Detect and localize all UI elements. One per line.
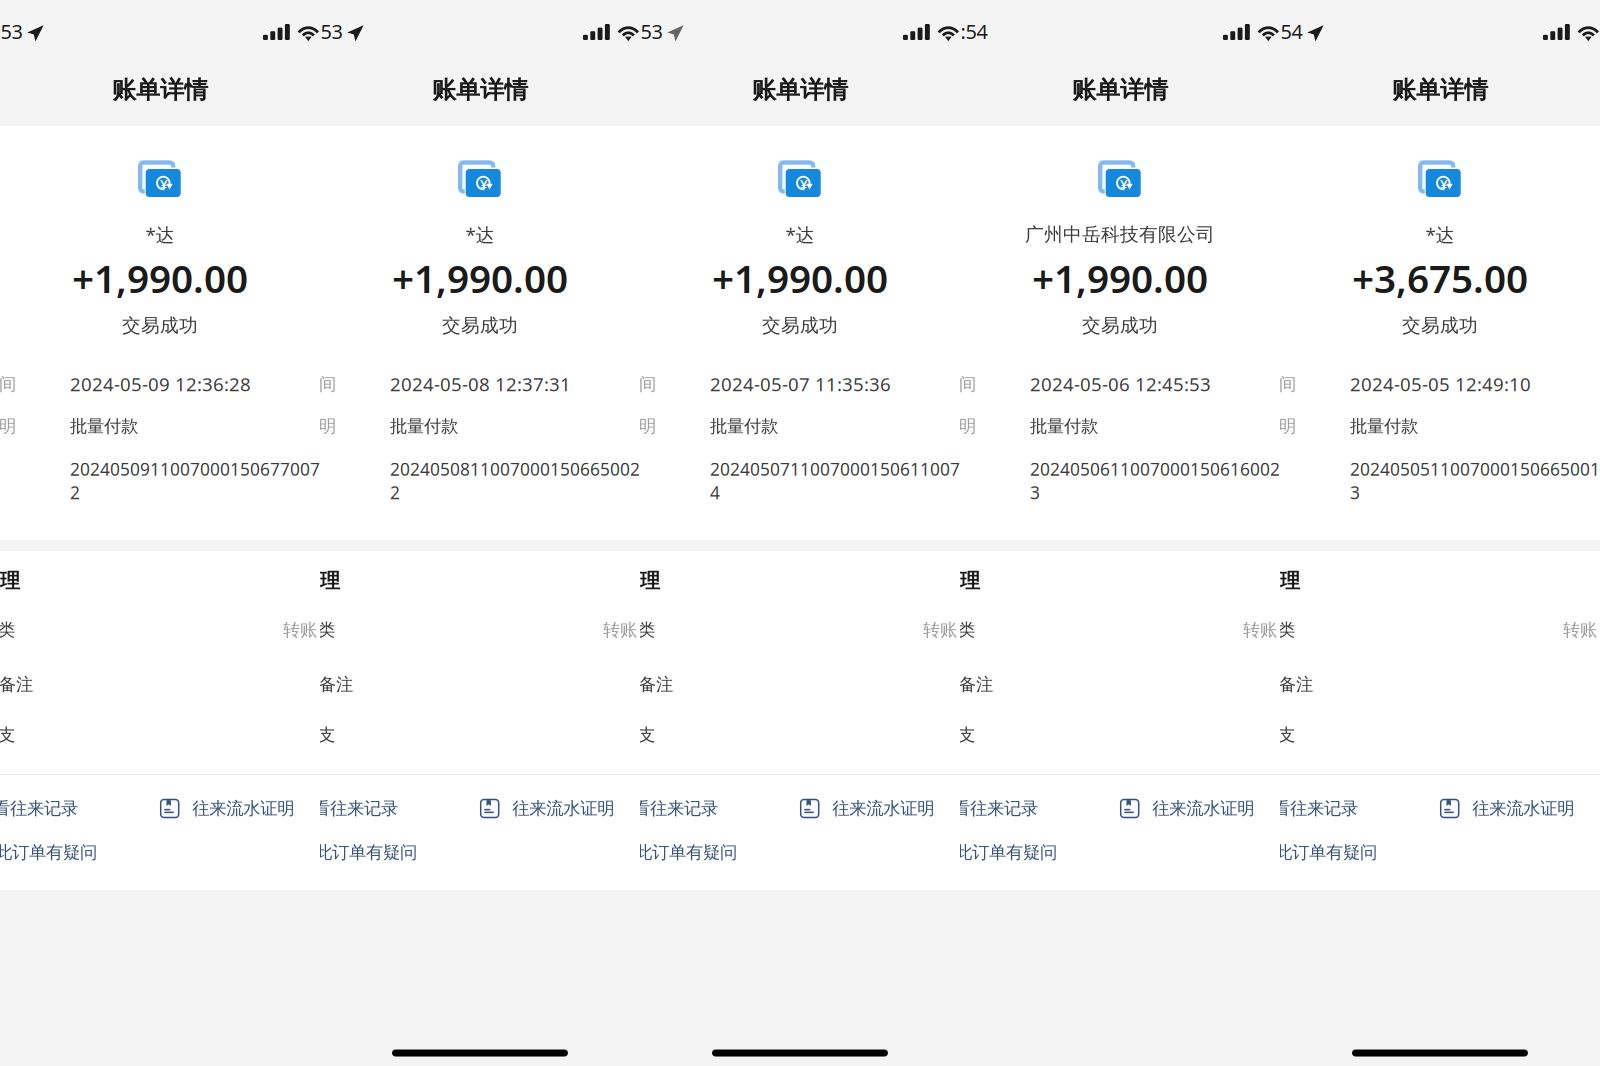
staticText: 分类 xyxy=(621,619,655,641)
button[interactable]: 备注 xyxy=(621,657,957,711)
staticText: 收支 xyxy=(1261,724,1295,746)
staticText: 转账 xyxy=(283,619,317,641)
staticText: 53 xyxy=(320,18,342,45)
staticText: 查看往来记录 xyxy=(296,798,398,819)
staticText: 往来流水证明 xyxy=(1472,798,1574,819)
staticText: 批量付款 xyxy=(1030,415,1098,437)
button[interactable]: 分类 xyxy=(0,603,317,657)
button[interactable]: 收支 xyxy=(0,710,317,760)
staticText: 2024-05-08 12:37:31 xyxy=(390,371,571,396)
staticText: 此订单有疑问 xyxy=(955,842,1057,863)
staticText: 批量付款 xyxy=(710,415,778,437)
staticText: +1,990.00 xyxy=(392,252,568,304)
staticText: 分类 xyxy=(1261,619,1295,641)
staticText: 备注 xyxy=(1279,674,1313,695)
staticText: 账单管理 xyxy=(580,568,660,593)
staticText: 2024-05-09 12:36:28 xyxy=(70,371,251,396)
staticText: 交易时间 xyxy=(1228,373,1296,395)
staticText: 交易说明 xyxy=(908,415,976,437)
staticText: 转账 xyxy=(603,619,637,641)
staticText: 账单管理 xyxy=(900,568,980,593)
staticText: 批量付款 xyxy=(390,415,458,437)
button[interactable]: 收支 xyxy=(301,710,637,760)
staticText: 交易时间 xyxy=(908,373,976,395)
staticText: 账单管理 xyxy=(260,568,340,593)
button[interactable]: 备注 xyxy=(1261,657,1597,711)
staticText: 批量付款 xyxy=(1350,415,1418,437)
button[interactable]: 查看往来记录 xyxy=(265,797,398,819)
staticText: 交易说明 xyxy=(588,415,656,437)
staticText: 交易单号 xyxy=(891,458,959,479)
staticText: 20240506110070001506160024 xyxy=(1030,457,1290,480)
button[interactable]: 查看往来记录 xyxy=(905,797,1038,819)
button[interactable]: 备注 xyxy=(301,657,637,711)
staticText: 转账 xyxy=(923,619,957,641)
button[interactable]: 收支 xyxy=(1261,710,1597,760)
staticText: 交易单号 xyxy=(571,458,639,479)
button[interactable]: 往来流水证明 xyxy=(801,797,934,819)
staticText: 交易说明 xyxy=(0,415,16,437)
staticText: 交易单号 xyxy=(251,458,319,479)
staticText: 往来流水证明 xyxy=(1152,798,1254,819)
staticText: :54 xyxy=(960,18,987,45)
staticText: +1,990.00 xyxy=(1032,252,1208,304)
staticText: +1,990.00 xyxy=(72,252,248,304)
staticText: 54 xyxy=(1280,18,1302,45)
staticText: ¥ xyxy=(160,175,168,193)
staticText: 交易单号 xyxy=(1211,458,1279,479)
staticText: +1,990.00 xyxy=(712,252,888,304)
staticText: 查看往来记录 xyxy=(0,798,78,819)
button[interactable]: 往来流水证明 xyxy=(1441,797,1574,819)
staticText: 20240505110070001506650019 xyxy=(1350,457,1600,480)
staticText: 此订单有疑问 xyxy=(1275,842,1377,863)
staticText: *达 xyxy=(785,222,814,247)
staticText: 交易时间 xyxy=(0,373,16,395)
staticText: ¥ xyxy=(1120,175,1128,193)
staticText: +3,675.00 xyxy=(1352,252,1528,304)
staticText: 2024-05-06 12:45:53 xyxy=(1030,371,1211,396)
button[interactable]: 查看往来记录 xyxy=(585,797,718,819)
staticText: 转账 xyxy=(1243,619,1277,641)
button[interactable]: 分类 xyxy=(621,603,957,657)
staticText: 备注 xyxy=(319,674,353,695)
staticText: 分类 xyxy=(0,619,15,641)
staticText: 2 xyxy=(390,481,400,504)
button[interactable]: 分类 xyxy=(1261,603,1597,657)
staticText: 账单管理 xyxy=(0,568,20,593)
button[interactable]: 查看往来记录 xyxy=(0,797,78,819)
button[interactable]: 备注 xyxy=(941,657,1277,711)
staticText: 分类 xyxy=(301,619,335,641)
button[interactable]: 此订单有疑问 xyxy=(1244,841,1377,863)
staticText: 收支 xyxy=(941,724,975,746)
button[interactable]: 收支 xyxy=(941,710,1277,760)
staticText: 交易成功 xyxy=(1082,314,1158,337)
staticText: 查看往来记录 xyxy=(1256,798,1358,819)
button[interactable]: 分类 xyxy=(941,603,1277,657)
staticText: 3 xyxy=(1030,481,1040,504)
button[interactable]: 此订单有疑问 xyxy=(284,841,417,863)
staticText: ¥ xyxy=(800,175,808,193)
button[interactable]: 此订单有疑问 xyxy=(924,841,1057,863)
staticText: 转账 xyxy=(1563,619,1597,641)
staticText: 往来流水证明 xyxy=(512,798,614,819)
button[interactable]: 往来流水证明 xyxy=(161,797,294,819)
button[interactable]: 此订单有疑问 xyxy=(0,841,97,863)
button[interactable]: 往来流水证明 xyxy=(1121,797,1254,819)
button[interactable]: 此订单有疑问 xyxy=(604,841,737,863)
staticText: *达 xyxy=(145,222,174,247)
staticText: 账单详情 xyxy=(432,75,528,105)
staticText: 交易成功 xyxy=(122,314,198,337)
button[interactable]: 查看往来记录 xyxy=(1225,797,1358,819)
button[interactable]: 收支 xyxy=(621,710,957,760)
button[interactable]: 分类 xyxy=(301,603,637,657)
staticText: 20240509110070001506770076 xyxy=(70,457,330,480)
staticText: 账单详情 xyxy=(1072,75,1168,105)
staticText: 备注 xyxy=(959,674,993,695)
staticText: 此订单有疑问 xyxy=(0,842,97,863)
staticText: 53 xyxy=(0,18,22,45)
staticText: 20240507110070001506110073 xyxy=(710,457,970,480)
staticText: 备注 xyxy=(639,674,673,695)
button[interactable]: 往来流水证明 xyxy=(481,797,614,819)
staticText: 交易成功 xyxy=(442,314,518,337)
button[interactable]: 备注 xyxy=(0,657,317,711)
